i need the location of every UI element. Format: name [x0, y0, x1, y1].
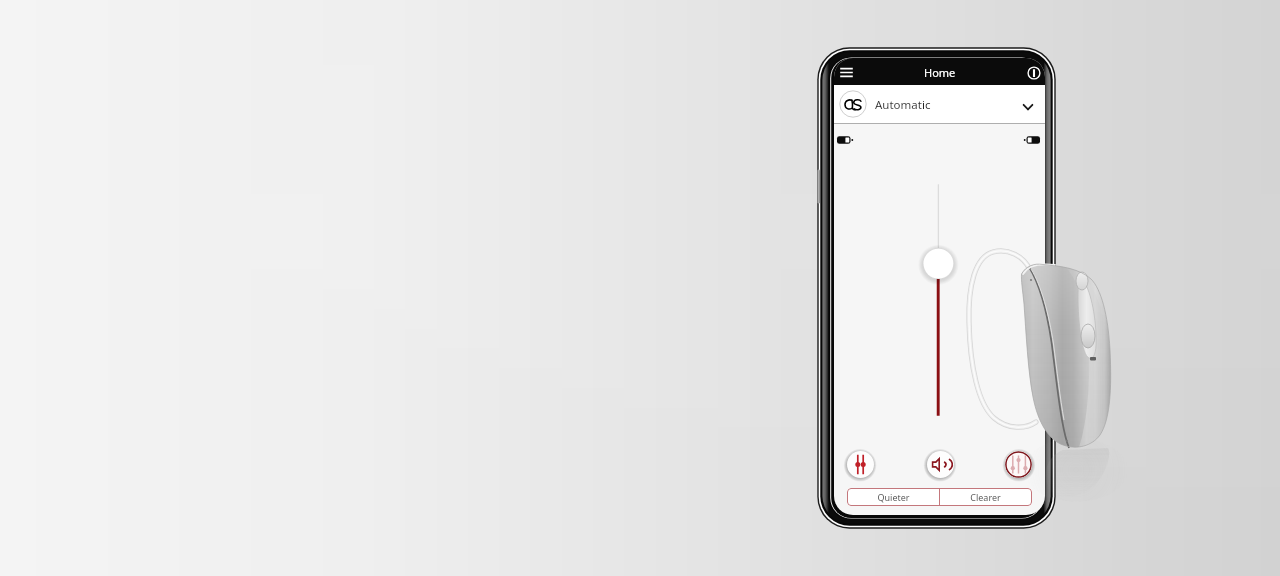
button[interactable]: Quieter [847, 488, 939, 506]
button[interactable]: Automatic [834, 85, 1045, 123]
button[interactable]: Balance [847, 451, 874, 478]
staticText: Quieter [877, 491, 910, 503]
button[interactable]: Clearer [939, 488, 1032, 506]
staticText: Automatic [875, 97, 931, 113]
button[interactable]: Volume [927, 451, 954, 478]
button[interactable]: Equalizer [1005, 451, 1032, 478]
staticText: Clearer [970, 491, 1001, 503]
staticText: Home [924, 65, 956, 80]
button[interactable]: Menu [836, 62, 857, 83]
button[interactable]: Information [1024, 63, 1044, 83]
